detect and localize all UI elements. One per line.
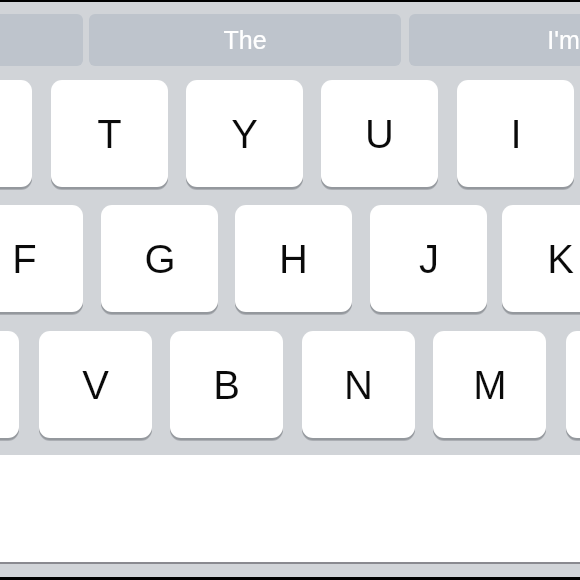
button[interactable]: J [370,205,487,312]
staticText: T [97,112,122,157]
staticText: I'm [547,26,580,54]
staticText: M [473,363,507,408]
button[interactable]: key [566,331,580,438]
staticText: K [547,237,574,282]
button[interactable]: T [51,80,168,187]
button[interactable]: M [433,331,546,438]
button[interactable]: V [39,331,152,438]
button[interactable]: N [302,331,415,438]
button[interactable]: R [0,80,32,187]
staticText: V [82,363,109,408]
button[interactable]: G [101,205,218,312]
staticText: G [144,237,176,282]
staticText: H [279,237,308,282]
staticText: F [12,237,37,282]
button[interactable]: C [0,331,19,438]
staticText: B [213,363,240,408]
button[interactable]: H [235,205,352,312]
button[interactable]: B [170,331,283,438]
button[interactable]: Y [186,80,303,187]
staticText: U [365,112,394,157]
button[interactable]: The [89,14,401,66]
button[interactable]: F [0,205,83,312]
staticText: N [344,363,373,408]
button[interactable]: K [502,205,580,312]
staticText: The [223,26,267,54]
button[interactable]: U [321,80,438,187]
button[interactable]: I [457,80,574,187]
staticText: I [510,112,522,157]
staticText: Y [231,112,258,157]
button[interactable]: I'm [409,14,580,66]
staticText: J [419,237,439,282]
